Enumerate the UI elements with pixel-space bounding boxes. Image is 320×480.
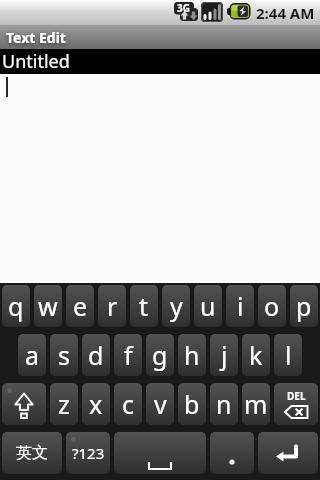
button[interactable]: r bbox=[98, 285, 126, 327]
staticText: l bbox=[285, 338, 292, 372]
button[interactable]: m bbox=[242, 383, 270, 425]
button[interactable]: w bbox=[34, 285, 62, 327]
button[interactable]: j bbox=[210, 334, 238, 376]
button[interactable]: u bbox=[194, 285, 222, 327]
button[interactable]: q bbox=[2, 285, 30, 327]
staticText: n bbox=[216, 387, 232, 421]
button[interactable] bbox=[114, 432, 206, 474]
staticText: 3G bbox=[177, 1, 190, 15]
button[interactable]: ?123 bbox=[66, 432, 110, 474]
staticText: w bbox=[38, 289, 58, 323]
staticText: 英文 bbox=[16, 443, 48, 463]
button[interactable]: l bbox=[274, 334, 302, 376]
button[interactable]: k bbox=[242, 334, 270, 376]
staticText: y bbox=[170, 289, 183, 323]
staticText: Text Edit bbox=[6, 28, 66, 47]
staticText: g bbox=[152, 338, 168, 372]
button[interactable]: o bbox=[258, 285, 286, 327]
staticText: Untitled bbox=[2, 49, 70, 74]
button[interactable]: e bbox=[66, 285, 94, 327]
staticText: i bbox=[237, 289, 244, 323]
button[interactable]: z bbox=[50, 383, 78, 425]
button[interactable]: p bbox=[290, 285, 318, 327]
staticText: 2:44 AM bbox=[256, 3, 315, 23]
button[interactable]: 3G bbox=[0, 0, 320, 25]
button[interactable]: h bbox=[178, 334, 206, 376]
staticText: b bbox=[184, 387, 200, 421]
button[interactable]: d bbox=[82, 334, 110, 376]
staticText: d bbox=[88, 338, 104, 372]
staticText: c bbox=[122, 387, 135, 421]
button[interactable]: n bbox=[210, 383, 238, 425]
button[interactable]: g bbox=[146, 334, 174, 376]
staticText: u bbox=[200, 289, 216, 323]
button[interactable]: Text Edit bbox=[0, 25, 320, 49]
staticText: m bbox=[244, 387, 268, 421]
staticText: e bbox=[73, 289, 88, 323]
button[interactable]: y bbox=[162, 285, 190, 327]
button[interactable]: s bbox=[50, 334, 78, 376]
staticText: DEL bbox=[287, 389, 306, 403]
button[interactable]: i bbox=[226, 285, 254, 327]
staticText: j bbox=[221, 338, 228, 372]
button[interactable] bbox=[0, 74, 320, 283]
staticText: a bbox=[25, 338, 40, 372]
button[interactable]: t bbox=[130, 285, 158, 327]
staticText: x bbox=[89, 387, 103, 421]
staticText: k bbox=[249, 338, 263, 372]
button[interactable]: 英文 bbox=[2, 432, 62, 474]
staticText: o bbox=[264, 289, 280, 323]
staticText: ?123 bbox=[72, 443, 105, 463]
staticText: z bbox=[58, 387, 70, 421]
staticText: f bbox=[124, 338, 133, 372]
staticText: s bbox=[58, 338, 70, 372]
button[interactable]: v bbox=[146, 383, 174, 425]
button[interactable]: a bbox=[18, 334, 46, 376]
button[interactable] bbox=[210, 432, 254, 474]
staticText: h bbox=[184, 338, 200, 372]
button[interactable]: DEL bbox=[274, 383, 318, 425]
staticText: v bbox=[154, 387, 167, 421]
button[interactable]: f bbox=[114, 334, 142, 376]
staticText: t bbox=[139, 289, 149, 323]
staticText: r bbox=[107, 289, 118, 323]
button[interactable] bbox=[258, 432, 318, 474]
button[interactable]: Untitled bbox=[0, 49, 320, 74]
staticText: q bbox=[8, 289, 24, 323]
button[interactable]: b bbox=[178, 383, 206, 425]
staticText: p bbox=[296, 289, 312, 323]
button[interactable]: c bbox=[114, 383, 142, 425]
button[interactable]: x bbox=[82, 383, 110, 425]
button[interactable] bbox=[2, 383, 46, 425]
